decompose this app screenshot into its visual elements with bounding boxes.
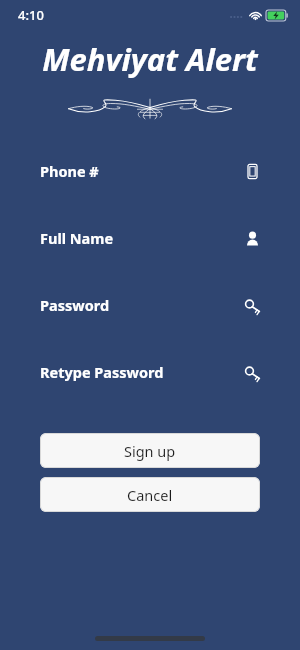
- staticText: 4:10: [18, 6, 44, 24]
- staticText: Sign up: [124, 441, 176, 461]
- button[interactable]: Full Name: [0, 215, 300, 282]
- button[interactable]: Cancel: [40, 477, 260, 512]
- button[interactable]: Sign up: [40, 433, 260, 468]
- button[interactable]: Retype Password: [0, 349, 300, 416]
- button[interactable]: Password: [0, 282, 300, 349]
- staticText: Retype Password: [40, 362, 164, 382]
- button[interactable]: Phone #: [0, 148, 300, 215]
- staticText: Mehviyat Alert: [42, 38, 258, 80]
- staticText: Full Name: [40, 228, 114, 248]
- staticText: Password: [40, 295, 110, 315]
- staticText: Phone #: [40, 161, 99, 181]
- staticText: Cancel: [127, 485, 173, 505]
